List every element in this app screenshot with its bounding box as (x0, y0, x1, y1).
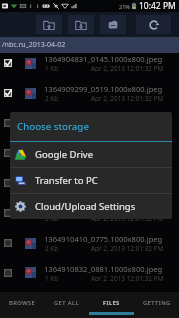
staticText: Transfer to PC (35, 174, 98, 187)
button[interactable]: Cloud upload (100, 15, 126, 34)
staticText: 2 Kb (45, 214, 59, 222)
button[interactable]: Upload to folder (36, 15, 62, 34)
staticText: Apr 2, 2013 12:01:32 PM (91, 214, 164, 222)
staticText: 1364910410_0775.1000x800.jpeg (44, 234, 163, 244)
staticText: Apr 2, 2013 12:01:32 PM (91, 94, 164, 102)
staticText: 2 Kb (45, 94, 59, 102)
staticText: FILES (103, 299, 120, 307)
staticText: 1364905810_0411.1000x800.jpeg (44, 174, 163, 184)
button[interactable]: 1364910832_0881.1000x800.jpeg (0, 263, 179, 292)
button[interactable]: Google Drive (10, 142, 172, 167)
button[interactable]: GETTING (134, 292, 179, 318)
button[interactable]: GET ALL (44, 292, 89, 318)
button[interactable]: 1364904711_0145.1000x800.jpeg (0, 113, 179, 143)
button[interactable]: 1364904831_0145.1000x800.jpeg (0, 53, 179, 83)
button[interactable]: 1364909299_0519.1000x800.jpeg (0, 83, 179, 113)
staticText: 1364910832_0881.1000x800.jpeg (44, 264, 163, 274)
staticText: 2 Kb (45, 154, 59, 162)
button[interactable]: 1364905810_0411.1000x800.jpeg (0, 173, 179, 203)
staticText: 21% (119, 3, 130, 10)
staticText: 10:42 PM (139, 0, 176, 12)
staticText: 1364905604_0307.1000x800.jpeg (44, 144, 163, 154)
staticText: /nbc.ru_2013-04-02 (2, 40, 66, 50)
staticText: Apr 2, 2013 12:01:32 PM (91, 154, 164, 162)
staticText: 1 Kb (45, 124, 59, 132)
button[interactable]: Download folder (68, 15, 94, 34)
staticText: Apr 2, 2013 12:01:32 PM (91, 244, 164, 252)
staticText: Apr 2, 2013 12:01:32 PM (91, 64, 164, 72)
button[interactable]: FILES (89, 292, 134, 318)
button[interactable]: 1364905215_0603.1000x800.jpeg (0, 203, 179, 233)
staticText: Choose storage (17, 120, 89, 133)
staticText: 1364904831_0145.1000x800.jpeg (44, 54, 163, 64)
button[interactable]: /nbc.ru_2013-04-02 (0, 37, 179, 53)
staticText: BROWSE (9, 299, 36, 307)
staticText: Google Drive (35, 148, 94, 161)
button[interactable]: BROWSE (0, 292, 44, 318)
button[interactable]: Refresh (136, 15, 171, 34)
staticText: 1 Kb (45, 64, 59, 72)
button[interactable]: 1364905604_0307.1000x800.jpeg (0, 143, 179, 173)
staticText: 1364909299_0519.1000x800.jpeg (44, 84, 163, 94)
staticText: GET ALL (54, 299, 79, 307)
staticText: Cloud/Upload Settings (35, 200, 136, 213)
staticText: GETTING (143, 299, 171, 307)
button[interactable]: 1364910410_0775.1000x800.jpeg (0, 233, 179, 263)
button[interactable]: Transfer to PC (10, 168, 172, 193)
staticText: 2 Kb (45, 244, 59, 252)
staticText: 1 Kb (45, 274, 59, 281)
button[interactable]: Cloud/Upload Settings (10, 194, 172, 219)
staticText: 1364905215_0603.1000x800.jpeg (44, 204, 163, 214)
staticText: Apr 2, 2013 12:01:32 PM (91, 274, 164, 281)
